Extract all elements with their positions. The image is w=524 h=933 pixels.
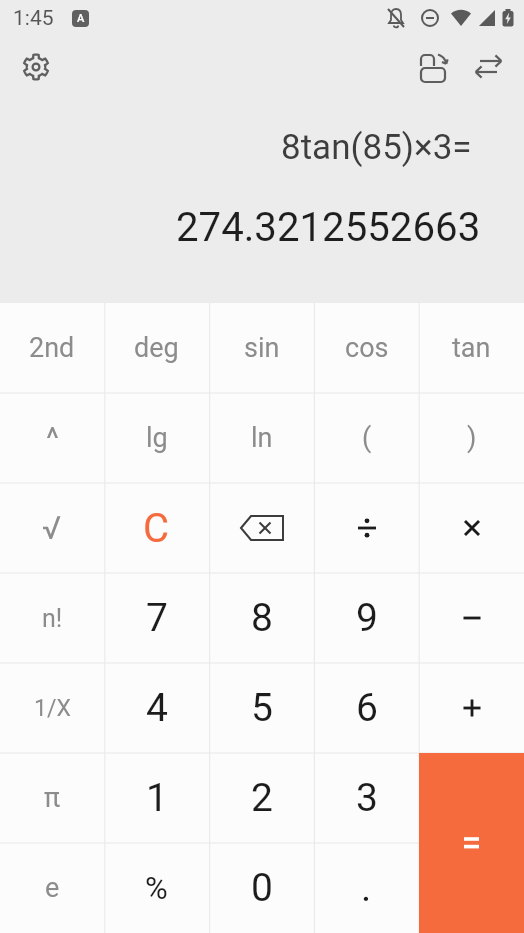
button[interactable]: ( bbox=[314, 393, 419, 483]
staticText: . bbox=[361, 865, 372, 911]
button[interactable]: deg bbox=[104, 303, 209, 393]
button[interactable]: cos bbox=[314, 303, 419, 393]
staticText: 8tan(85)×3= bbox=[281, 127, 472, 168]
staticText: ) bbox=[467, 422, 477, 454]
button[interactable]: sin bbox=[209, 303, 314, 393]
button[interactable]: 1/X bbox=[0, 663, 104, 753]
staticText: 4 bbox=[146, 685, 168, 731]
button[interactable]: % bbox=[104, 843, 209, 933]
button[interactable] bbox=[419, 483, 524, 573]
button[interactable]: √ bbox=[0, 483, 104, 573]
staticText: e bbox=[45, 872, 60, 904]
button[interactable]: 1 bbox=[104, 753, 209, 843]
button[interactable]: . bbox=[314, 843, 419, 933]
button[interactable]: 8 bbox=[209, 573, 314, 663]
button[interactable] bbox=[468, 46, 510, 88]
staticText: ( bbox=[362, 422, 372, 454]
button[interactable]: lg bbox=[104, 393, 209, 483]
staticText: 2nd bbox=[29, 332, 75, 364]
staticText: 6 bbox=[356, 685, 378, 731]
button[interactable]: 5 bbox=[209, 663, 314, 753]
staticText: 2 bbox=[251, 775, 273, 821]
staticText: sin bbox=[244, 332, 280, 364]
button[interactable]: tan bbox=[419, 303, 524, 393]
button[interactable]: 3 bbox=[314, 753, 419, 843]
button[interactable]: 6 bbox=[314, 663, 419, 753]
button[interactable] bbox=[414, 47, 454, 87]
button[interactable]: 2 bbox=[209, 753, 314, 843]
button[interactable] bbox=[17, 48, 55, 86]
staticText: 274.3212552663 bbox=[176, 204, 481, 251]
staticText: A bbox=[77, 12, 85, 25]
button[interactable]: C bbox=[104, 483, 209, 573]
button[interactable] bbox=[314, 483, 419, 573]
staticText: 1/X bbox=[34, 695, 71, 722]
button[interactable] bbox=[419, 573, 524, 663]
button[interactable] bbox=[209, 483, 314, 573]
button[interactable]: 9 bbox=[314, 573, 419, 663]
button[interactable]: 4 bbox=[104, 663, 209, 753]
button[interactable]: ) bbox=[419, 393, 524, 483]
staticText: 0 bbox=[251, 865, 273, 911]
button[interactable]: π bbox=[0, 753, 104, 843]
button[interactable]: 7 bbox=[104, 573, 209, 663]
staticText: % bbox=[145, 870, 168, 906]
button[interactable]: 2nd bbox=[0, 303, 104, 393]
button[interactable]: n! bbox=[0, 573, 104, 663]
staticText: lg bbox=[146, 422, 168, 454]
staticText: C bbox=[143, 505, 170, 552]
staticText: tan bbox=[452, 332, 491, 364]
staticText: √ bbox=[42, 509, 62, 547]
staticText: 1 bbox=[146, 775, 168, 821]
staticText: 9 bbox=[356, 595, 378, 641]
staticText: n! bbox=[42, 604, 63, 633]
button[interactable]: 0 bbox=[209, 843, 314, 933]
staticText: 7 bbox=[146, 595, 168, 641]
staticText: 1:45 bbox=[13, 6, 54, 31]
button[interactable] bbox=[419, 753, 524, 933]
staticText: 8 bbox=[251, 595, 273, 641]
button[interactable]: e bbox=[0, 843, 104, 933]
staticText: ln bbox=[251, 422, 273, 454]
button[interactable]: ln bbox=[209, 393, 314, 483]
staticText: cos bbox=[345, 332, 389, 364]
staticText: 5 bbox=[251, 685, 273, 731]
staticText: π bbox=[44, 782, 61, 814]
staticText: ^ bbox=[46, 420, 59, 456]
staticText: deg bbox=[134, 332, 179, 364]
button[interactable] bbox=[419, 663, 524, 753]
staticText: 3 bbox=[356, 775, 378, 821]
button[interactable]: ^ bbox=[0, 393, 104, 483]
